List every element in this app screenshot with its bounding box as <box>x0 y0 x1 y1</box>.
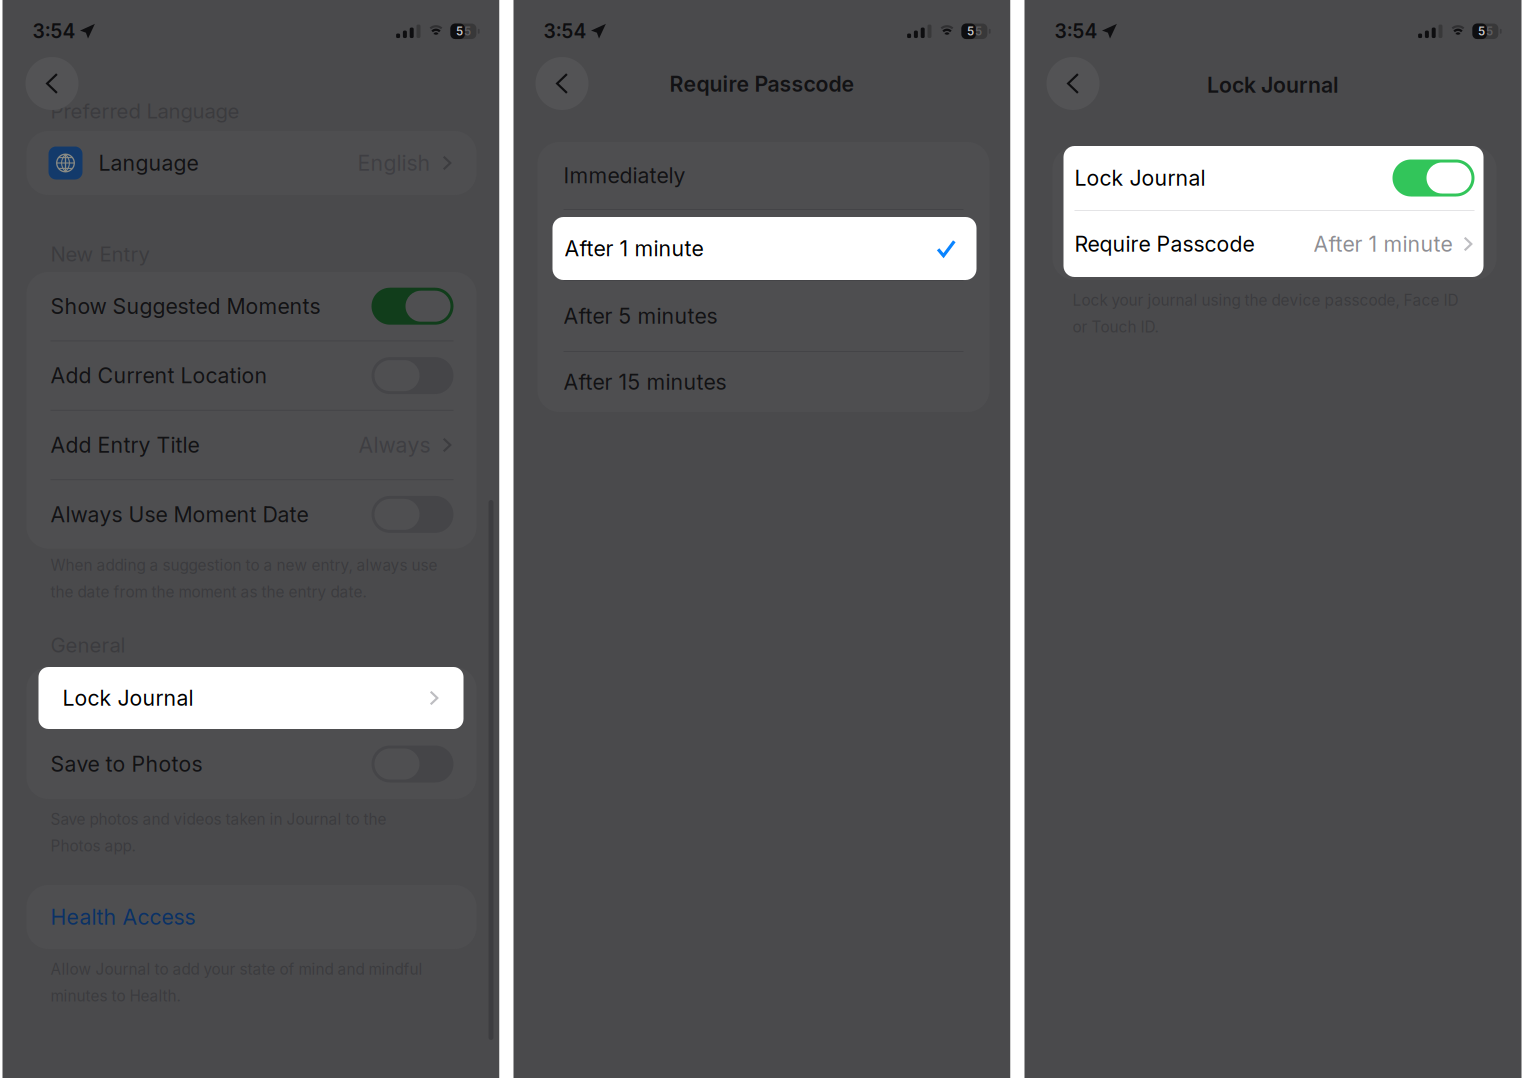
staticText: Health Access <box>50 904 195 930</box>
staticText: Allow Journal to add your state of mind … <box>50 960 422 979</box>
button[interactable]: Always Use Moment Date <box>26 480 476 549</box>
staticText: 5 <box>975 24 982 38</box>
staticText: 3:54 <box>32 20 75 43</box>
staticText: When adding a suggestion to a new entry,… <box>50 556 437 575</box>
staticText: Photos app. <box>50 837 135 855</box>
staticText: Always <box>358 432 430 458</box>
staticText: 5 <box>456 24 463 38</box>
staticText: 5 <box>967 24 974 38</box>
staticText: After 1 minute <box>564 236 703 261</box>
button[interactable]: Show Suggested Moments <box>26 272 476 340</box>
button[interactable]: Immediately <box>537 142 989 209</box>
button[interactable]: Back <box>1046 57 1099 110</box>
staticText: 3:54 <box>1054 20 1097 43</box>
button[interactable]: After 15 minutes <box>537 352 989 412</box>
staticText: New Entry <box>50 242 149 266</box>
staticText: Add Entry Title <box>50 432 199 458</box>
button[interactable]: Lock Journal <box>38 667 463 729</box>
staticText: Require Passcode <box>1074 231 1254 257</box>
button[interactable]: Back <box>535 57 588 110</box>
staticText: the date from the moment as the entry da… <box>50 583 366 601</box>
staticText: Lock your journal using the device passc… <box>1072 291 1458 310</box>
staticText: Show Suggested Moments <box>50 293 320 319</box>
staticText: Save to Photos <box>50 751 202 777</box>
button[interactable]: Lock Journal <box>1063 146 1483 210</box>
staticText: Immediately <box>563 163 685 188</box>
staticText: Language <box>98 150 198 176</box>
button[interactable]: Lock Journal <box>26 667 476 729</box>
button[interactable]: Back <box>25 57 78 110</box>
staticText: After 1 minute <box>563 232 702 258</box>
staticText: 5 <box>464 24 471 38</box>
button[interactable]: Language <box>26 131 476 195</box>
button[interactable]: After 1 minute <box>552 217 976 280</box>
staticText: Always Use Moment Date <box>50 501 308 527</box>
staticText: 5 <box>1478 24 1485 38</box>
button[interactable]: Health Access <box>26 885 476 949</box>
button[interactable]: After 5 minutes <box>537 281 989 351</box>
staticText: English <box>357 150 430 176</box>
staticText: Lock Journal <box>62 685 193 711</box>
staticText: Add Current Location <box>50 363 267 388</box>
staticText: 3:54 <box>543 20 586 43</box>
staticText: Lock Journal <box>1207 72 1339 98</box>
staticText: Save photos and videos taken in Journal … <box>50 810 386 829</box>
staticText: After 1 minute <box>1313 231 1452 257</box>
button[interactable]: Require Passcode <box>1063 211 1483 277</box>
staticText: Lock Journal <box>50 685 181 711</box>
staticText: After 15 minutes <box>563 369 726 395</box>
staticText: General <box>50 633 125 657</box>
button[interactable]: Add Current Location <box>26 341 476 410</box>
button[interactable]: After 1 minute <box>537 210 989 280</box>
button[interactable]: Save to Photos <box>26 729 476 799</box>
staticText: 5 <box>1486 24 1493 38</box>
staticText: minutes to Health. <box>50 987 180 1005</box>
staticText: After 5 minutes <box>563 303 717 329</box>
button[interactable]: Add Entry Title <box>26 411 476 479</box>
staticText: Require Passcode <box>669 71 854 97</box>
staticText: Lock Journal <box>1074 165 1205 191</box>
staticText: or Touch ID. <box>1072 318 1158 336</box>
staticText: Preferred Language <box>50 99 239 123</box>
